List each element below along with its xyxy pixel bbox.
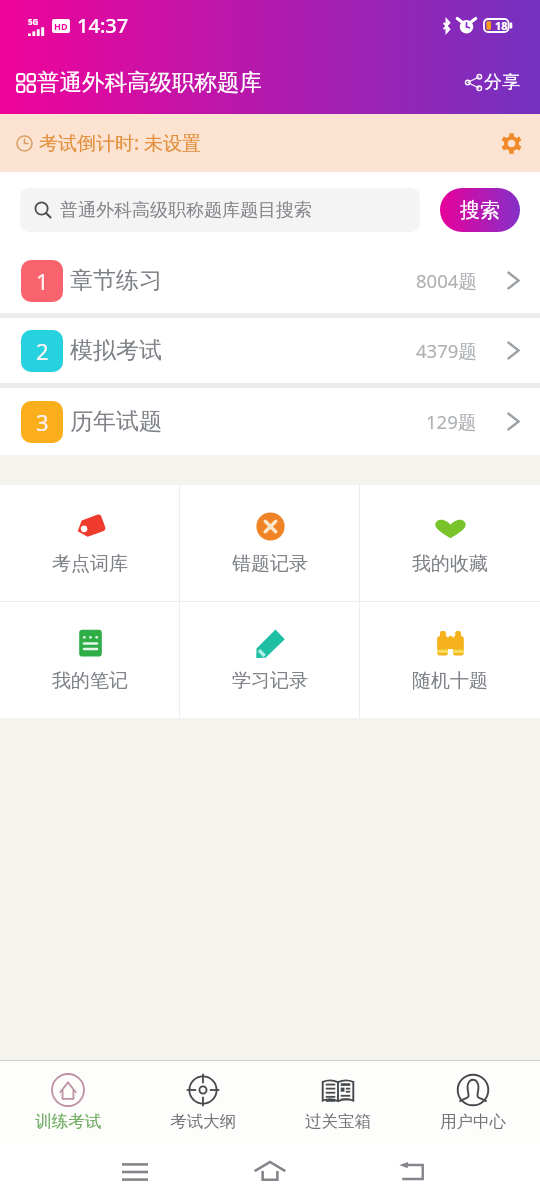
staticText: 18 [495, 18, 508, 33]
staticText: 我的收藏 [412, 552, 488, 576]
staticText: 训练考试 [35, 1111, 101, 1132]
staticText: 4379题 [416, 338, 477, 363]
button[interactable]: 搜索 [440, 188, 520, 232]
button[interactable]: 过关宝箱 [270, 1060, 405, 1144]
button[interactable]: 2 [0, 318, 540, 383]
staticText: 错题记录 [232, 552, 308, 576]
staticText: 过关宝箱 [305, 1111, 371, 1132]
staticText: 搜索 [460, 198, 500, 223]
button[interactable]: 学习记录 [180, 602, 360, 718]
button[interactable]: 随机十题 [360, 602, 540, 718]
button[interactable]: 考点词库 [0, 485, 180, 601]
staticText: 历年试题 [70, 407, 162, 436]
button[interactable]: 我的笔记 [0, 602, 180, 718]
staticText: 章节练习 [70, 266, 162, 295]
staticText: 考试大纲 [170, 1111, 236, 1132]
staticText: 考试倒计时: 未设置 [39, 130, 202, 156]
staticText: 129题 [426, 409, 477, 434]
button[interactable]: 分享 [461, 65, 524, 100]
button[interactable]: 考试大纲 [135, 1060, 270, 1144]
staticText: 普通外科高级职称题库 [37, 68, 262, 96]
button[interactable]: Home [243, 1145, 297, 1199]
staticText: 1 [36, 266, 49, 296]
staticText: 随机十题 [412, 669, 488, 693]
button[interactable]: 用户中心 [405, 1060, 540, 1144]
staticText: 8004题 [416, 268, 477, 293]
button[interactable]: 错题记录 [180, 485, 360, 601]
button[interactable]: 1 [0, 248, 540, 313]
staticText: 普通外科高级职称题库题目搜索 [60, 199, 312, 222]
button[interactable]: Back [385, 1145, 439, 1199]
staticText: 14:37 [77, 12, 129, 39]
button[interactable]: Settings [496, 128, 526, 158]
button[interactable]: Recent apps [108, 1145, 162, 1199]
button[interactable]: 训练考试 [0, 1060, 135, 1144]
staticText: 学习记录 [232, 669, 308, 693]
staticText: 考点词库 [52, 552, 128, 576]
button[interactable]: 3 [0, 388, 540, 455]
staticText: 3 [36, 407, 49, 437]
staticText: HD [54, 20, 68, 32]
staticText: 用户中心 [440, 1111, 506, 1132]
staticText: 2 [36, 336, 49, 366]
staticText: 5G [28, 16, 39, 27]
staticText: 分享 [484, 71, 520, 94]
button[interactable]: 我的收藏 [360, 485, 540, 601]
staticText: 模拟考试 [70, 336, 162, 365]
staticText: 我的笔记 [52, 669, 128, 693]
button[interactable]: 普通外科高级职称题库题目搜索 [20, 188, 420, 232]
